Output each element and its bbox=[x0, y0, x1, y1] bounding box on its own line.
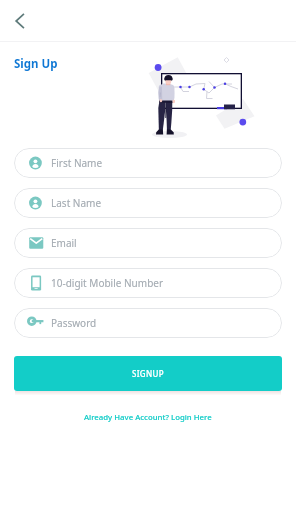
staticText: Last Name bbox=[51, 196, 102, 210]
staticText: Email bbox=[51, 236, 77, 250]
staticText: Password bbox=[51, 316, 97, 330]
button[interactable]: SIGNUP bbox=[14, 356, 282, 391]
staticText: SIGNUP bbox=[132, 368, 164, 379]
button[interactable]: Email bbox=[14, 228, 282, 258]
button[interactable]: Already Have Account? Login Here bbox=[78, 409, 218, 426]
staticText: Sign Up bbox=[14, 56, 58, 72]
button[interactable]: Password bbox=[14, 308, 282, 338]
staticText: First Name bbox=[51, 156, 103, 170]
button[interactable]: First Name bbox=[14, 148, 282, 178]
button[interactable]: Back bbox=[7, 8, 33, 34]
button[interactable]: Last Name bbox=[14, 188, 282, 218]
staticText: Already Have Account? Login Here bbox=[84, 412, 212, 423]
button[interactable]: 10-digit Mobile Number bbox=[14, 268, 282, 298]
staticText: 10-digit Mobile Number bbox=[51, 276, 164, 290]
